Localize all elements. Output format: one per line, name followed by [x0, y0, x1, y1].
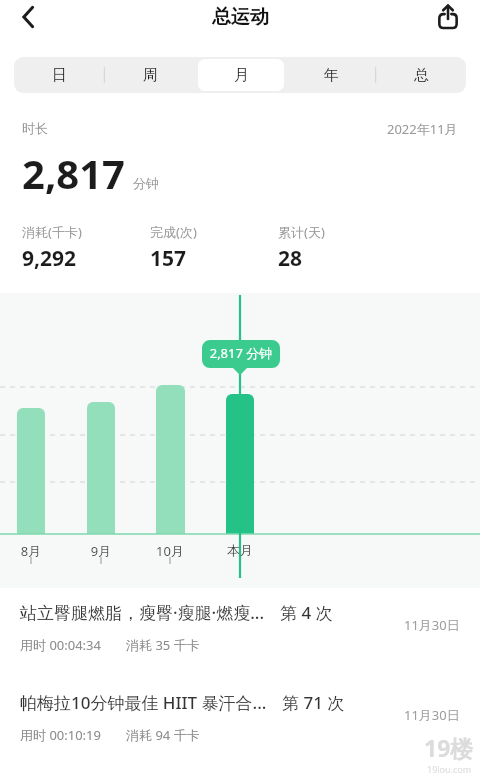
staticText: 11月30日: [404, 616, 460, 634]
button[interactable]: 日: [16, 59, 103, 91]
staticText: 总: [414, 66, 429, 85]
staticText: 19lou.com: [427, 763, 472, 775]
staticText: 用时 00:10:19: [20, 726, 101, 744]
staticText: 完成(次): [150, 223, 197, 241]
staticText: 10月: [140, 542, 200, 560]
staticText: 8月: [1, 542, 61, 560]
staticText: 第 4 次: [280, 601, 333, 624]
staticText: 本月: [210, 542, 270, 558]
staticText: 2,817: [22, 146, 125, 200]
staticText: 第 71 次: [282, 691, 345, 714]
staticText: 9,292: [22, 244, 77, 273]
staticText: 9月: [71, 542, 131, 560]
staticText: 分钟: [133, 175, 159, 191]
button[interactable]: [12, 0, 48, 34]
button[interactable]: 帕梅拉10分钟最佳 HIIT 暴汗合...: [0, 674, 480, 761]
staticText: 月: [234, 66, 249, 85]
button[interactable]: 年: [288, 59, 374, 91]
staticText: 19楼: [424, 732, 474, 763]
staticText: 年: [324, 66, 339, 85]
staticText: 站立臀腿燃脂，瘦臀·瘦腿·燃瘦...: [20, 601, 265, 624]
staticText: 2022年11月: [387, 120, 458, 138]
staticText: 累计(天): [278, 223, 325, 241]
button[interactable]: [430, 0, 466, 34]
staticText: 2,817 分钟: [202, 344, 280, 362]
button[interactable]: 周: [107, 59, 194, 91]
staticText: 周: [143, 66, 158, 85]
staticText: 帕梅拉10分钟最佳 HIIT 暴汗合...: [20, 691, 267, 714]
staticText: 157: [150, 244, 187, 273]
staticText: 消耗 94 千卡: [126, 726, 200, 744]
button[interactable]: 月: [198, 59, 284, 91]
staticText: 消耗(千卡): [22, 223, 82, 241]
staticText: 11月30日: [404, 706, 460, 724]
button[interactable]: 站立臀腿燃脂，瘦臀·瘦腿·燃瘦...: [0, 588, 480, 674]
staticText: 总运动: [212, 5, 269, 29]
button[interactable]: 总: [378, 59, 464, 91]
staticText: 日: [52, 66, 67, 85]
staticText: 消耗 35 千卡: [126, 636, 200, 654]
staticText: 28: [278, 244, 303, 273]
staticText: 用时 00:04:34: [20, 636, 101, 654]
staticText: 时长: [22, 120, 48, 136]
